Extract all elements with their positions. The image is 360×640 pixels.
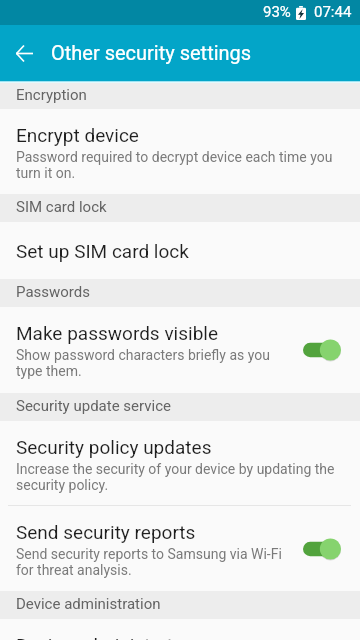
- staticText: Passwords: [16, 283, 90, 301]
- staticText: Send security reports to Samsung via Wi-…: [16, 546, 288, 578]
- button[interactable]: Set up SIM card lock: [0, 222, 360, 279]
- staticText: 93%: [263, 3, 291, 21]
- staticText: Device administrators: [16, 634, 200, 640]
- staticText: Show password characters briefly as you …: [16, 347, 288, 379]
- button[interactable]: Send security reports: [0, 506, 360, 591]
- button[interactable]: Toggle setting: [303, 339, 341, 361]
- staticText: Make passwords visible: [16, 322, 218, 344]
- staticText: Send security reports: [16, 521, 196, 543]
- staticText: Security update service: [16, 397, 171, 415]
- staticText: Device administration: [16, 595, 161, 613]
- button[interactable]: Device administrators: [0, 619, 360, 640]
- staticText: Set up SIM card lock: [16, 240, 189, 262]
- button[interactable]: Encrypt device: [0, 109, 360, 194]
- staticText: SIM card lock: [16, 198, 107, 216]
- button[interactable]: Navigate up: [0, 25, 48, 81]
- button[interactable]: Security policy updates: [0, 421, 360, 505]
- button[interactable]: Make passwords visible: [0, 307, 360, 393]
- staticText: Security policy updates: [16, 436, 212, 458]
- staticText: Encryption: [16, 86, 87, 104]
- button[interactable]: Toggle setting: [303, 538, 341, 560]
- staticText: Password required to decrypt device each…: [16, 149, 341, 181]
- staticText: Increase the security of your device by …: [16, 461, 341, 493]
- staticText: Other security settings: [51, 41, 252, 64]
- staticText: 07:44: [314, 3, 352, 21]
- staticText: Encrypt device: [16, 124, 139, 146]
